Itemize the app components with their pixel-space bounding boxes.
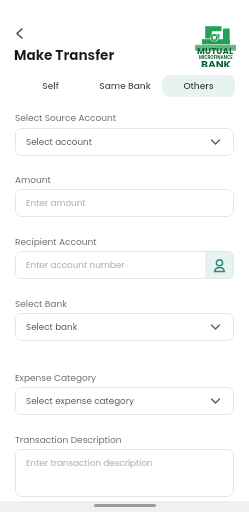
staticText: Amount [15, 174, 51, 187]
staticText: Transaction Description [15, 434, 122, 447]
staticText: MICROFINANCE [199, 54, 233, 60]
button[interactable]: Select bank [15, 313, 234, 341]
staticText: Enter transaction description [26, 457, 153, 469]
button[interactable]: Select account [15, 128, 234, 156]
staticText: Select expense category [26, 395, 211, 407]
button[interactable]: Enter amount [15, 189, 234, 217]
staticText: Select Source Account [15, 112, 116, 125]
staticText: Enter amount [26, 197, 86, 209]
button[interactable]: Others [162, 75, 235, 97]
button[interactable]: Enter transaction description [15, 449, 234, 497]
staticText: Expense Category [15, 372, 97, 385]
button[interactable]: Choose beneficiary [205, 251, 234, 279]
button[interactable]: Back [9, 23, 30, 44]
staticText: Recipient Account [15, 236, 97, 249]
button[interactable]: Self [14, 75, 87, 97]
staticText: Self [42, 80, 59, 93]
staticText: Same Bank [99, 80, 151, 93]
staticText: Select account [26, 136, 211, 148]
staticText: Select Bank [15, 298, 67, 311]
staticText: BANK [201, 57, 231, 67]
staticText: MUTUAL [197, 45, 234, 57]
button[interactable]: Select expense category [15, 387, 234, 415]
staticText: Others [183, 80, 214, 93]
staticText: Enter account number [26, 259, 205, 271]
staticText: Make Transfer [14, 46, 115, 65]
button[interactable]: Same Bank [88, 75, 161, 97]
staticText: Select bank [26, 321, 211, 333]
